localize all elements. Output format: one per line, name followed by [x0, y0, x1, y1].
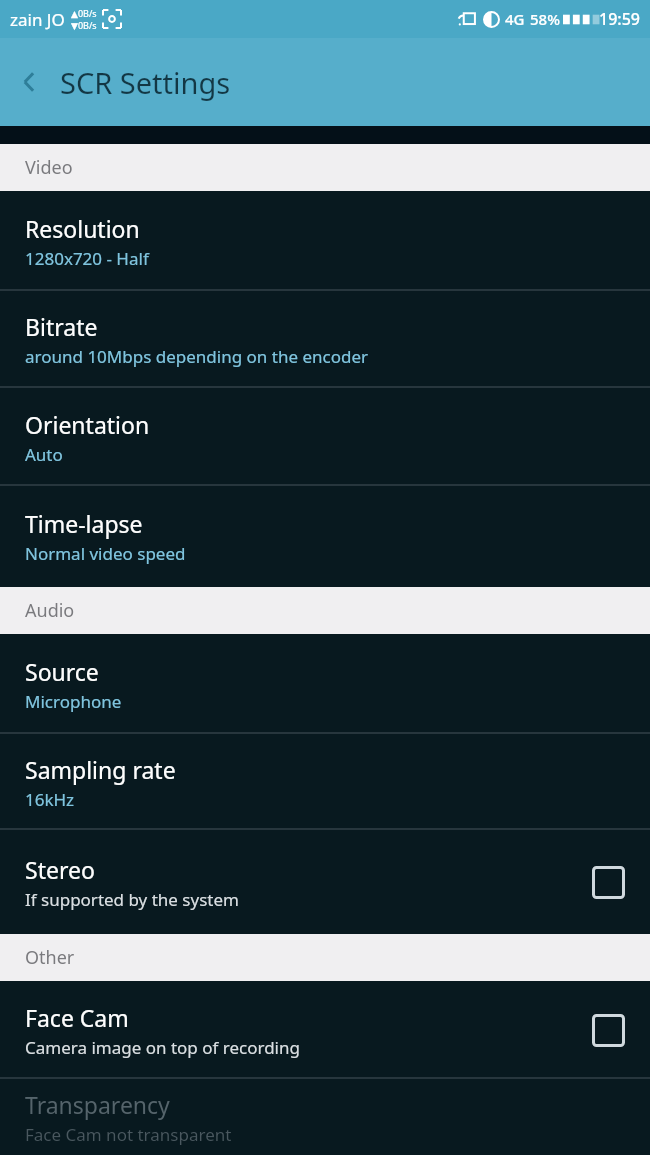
- staticText: around 10Mbps depending on the encoder: [25, 345, 369, 368]
- button[interactable]: Resolution: [0, 191, 650, 291]
- staticText: Sampling rate: [25, 754, 176, 785]
- staticText: Auto: [25, 443, 63, 466]
- staticText: Transparency: [25, 1089, 170, 1120]
- staticText: Stereo: [25, 854, 95, 885]
- staticText: Video: [25, 155, 73, 180]
- staticText: Normal video speed: [25, 542, 186, 565]
- button[interactable]: Orientation: [0, 388, 650, 486]
- staticText: ▼0B/s: [71, 19, 97, 31]
- staticText: Face Cam: [25, 1002, 129, 1033]
- staticText: 16kHz: [25, 788, 75, 811]
- staticText: Audio: [25, 598, 75, 623]
- staticText: zain JO: [10, 8, 65, 31]
- staticText: Bitrate: [25, 311, 98, 342]
- staticText: Orientation: [25, 409, 150, 440]
- button[interactable]: Stereo: [0, 830, 650, 934]
- button[interactable]: Transparency: [0, 1079, 650, 1155]
- staticText: If supported by the system: [25, 888, 239, 911]
- staticText: Other: [25, 945, 75, 970]
- staticText: Source: [25, 656, 99, 687]
- staticText: SCR Settings: [60, 63, 231, 102]
- staticText: Microphone: [25, 690, 122, 713]
- button[interactable]: Time-lapse: [0, 486, 650, 587]
- other: Stereo: [592, 866, 625, 899]
- button[interactable]: Face Cam: [0, 981, 650, 1079]
- other: Face Cam: [592, 1014, 625, 1047]
- staticText: 58%: [530, 9, 560, 29]
- staticText: Camera image on top of recording: [25, 1036, 300, 1059]
- button[interactable]: Back: [0, 38, 60, 126]
- staticText: Face Cam not transparent: [25, 1123, 232, 1146]
- staticText: 1280x720 - Half: [25, 247, 149, 270]
- staticText: Time-lapse: [25, 508, 143, 539]
- button[interactable]: Bitrate: [0, 291, 650, 388]
- staticText: Resolution: [25, 213, 140, 244]
- staticText: ▲0B/s: [71, 7, 97, 19]
- button[interactable]: Sampling rate: [0, 734, 650, 830]
- staticText: 19:59: [599, 8, 640, 30]
- button[interactable]: Source: [0, 634, 650, 734]
- staticText: 4G: [505, 9, 525, 29]
